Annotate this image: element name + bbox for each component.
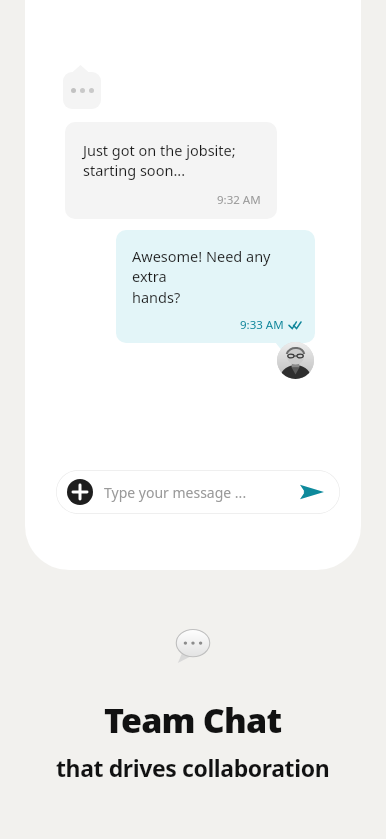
staticText: Team Chat	[104, 697, 282, 743]
staticText: Awesome! Need any extra hands?	[132, 246, 301, 308]
button[interactable]: Profile photo	[277, 342, 314, 379]
button[interactable]: Just got on the jobsite; starting soon..…	[65, 122, 277, 219]
staticText: 9:33 AM	[240, 317, 284, 333]
staticText: Just got on the jobsite; starting soon..…	[83, 140, 236, 181]
staticText: 9:32 AM	[217, 192, 261, 208]
button[interactable]: Send	[300, 482, 324, 502]
button[interactable]: Add attachment	[67, 479, 93, 505]
button[interactable]: Add attachment	[56, 470, 340, 514]
staticText: Type your message ...	[104, 483, 247, 502]
staticText: that drives collaboration	[56, 752, 330, 783]
button[interactable]: Awesome! Need any extra hands?	[116, 230, 315, 343]
